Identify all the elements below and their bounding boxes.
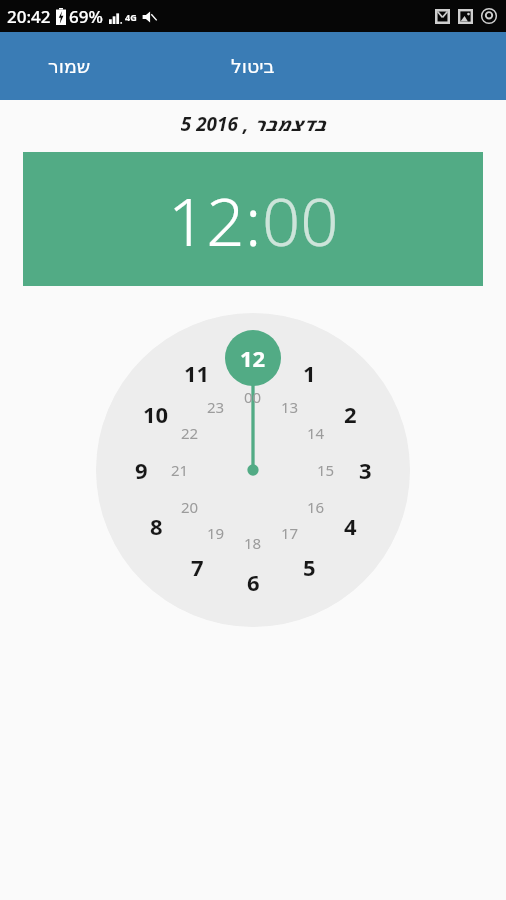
staticText: שמור: [48, 55, 91, 77]
staticText: 19: [207, 523, 225, 543]
staticText: 23: [207, 397, 225, 417]
button[interactable]: 00: [262, 174, 339, 265]
staticText: 18: [244, 533, 262, 553]
staticText: 5: [303, 552, 316, 582]
staticText: :: [245, 174, 262, 265]
staticText: 13: [281, 397, 299, 417]
staticText: 8: [150, 511, 163, 541]
button[interactable]: ביטול: [205, 39, 301, 93]
staticText: 15: [317, 460, 335, 480]
staticText: 4G: [125, 11, 137, 23]
button[interactable]: שמור: [36, 39, 103, 93]
staticText: 3: [359, 455, 372, 485]
staticText: 21: [171, 460, 189, 480]
staticText: 11: [184, 358, 210, 388]
staticText: 20:42: [7, 5, 51, 28]
staticText: 1: [303, 358, 316, 388]
staticText: 4: [344, 511, 357, 541]
staticText: 22: [181, 423, 199, 443]
staticText: 20: [181, 497, 199, 517]
staticText: 17: [281, 523, 299, 543]
staticText: 00: [244, 387, 262, 407]
staticText: 2: [344, 399, 357, 429]
staticText: 00: [262, 174, 339, 265]
staticText: 10: [143, 399, 169, 429]
staticText: 14: [307, 423, 325, 443]
staticText: 7: [191, 552, 204, 582]
staticText: ביטול: [231, 55, 275, 77]
staticText: 12: [168, 174, 245, 265]
staticText: 5 בדצמבר , 2016: [0, 111, 506, 137]
button[interactable]: 12: [168, 174, 245, 265]
staticText: 12: [240, 343, 266, 373]
staticText: 69%: [69, 5, 103, 28]
button[interactable]: Clock face, pick hour: [96, 313, 410, 627]
staticText: 9: [135, 455, 148, 485]
staticText: 6: [247, 567, 260, 597]
staticText: 16: [307, 497, 325, 517]
